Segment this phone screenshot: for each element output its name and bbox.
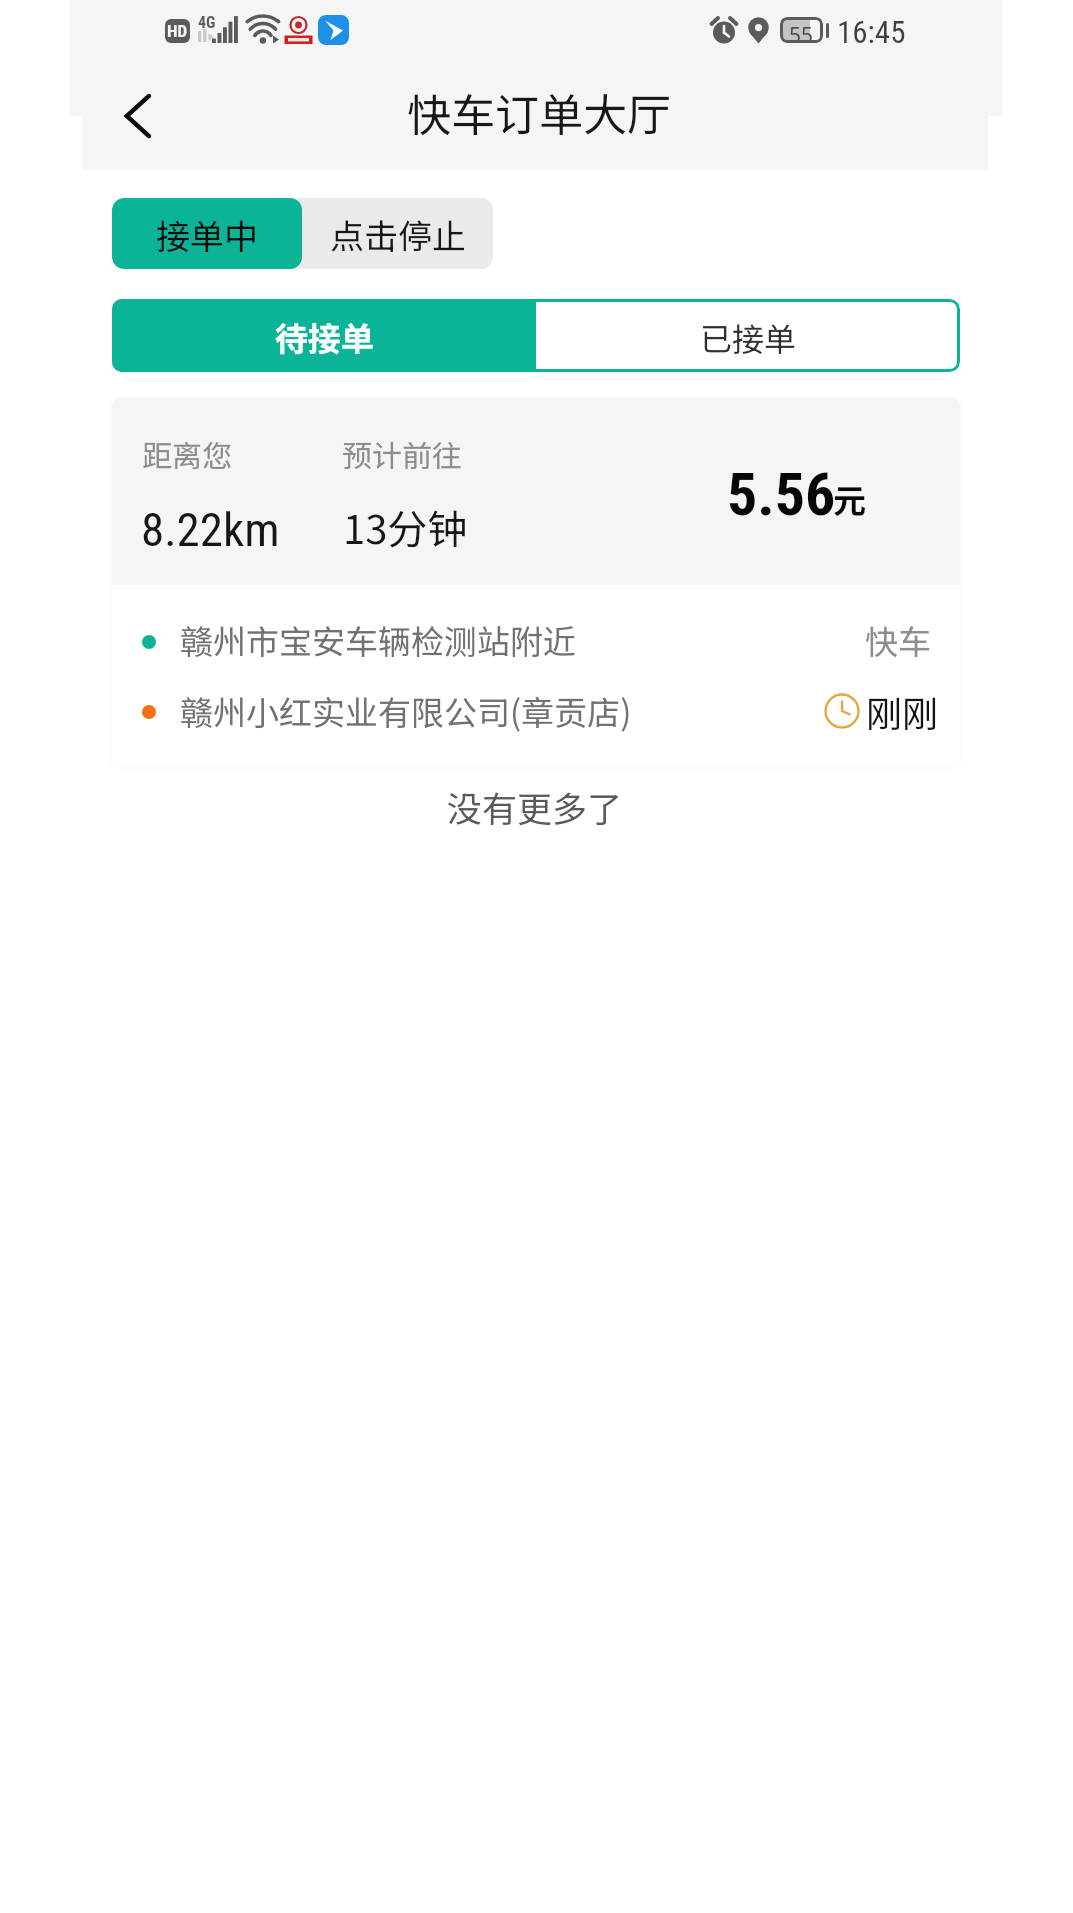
staticText: 55 [789, 21, 814, 43]
staticText: 16:45 [837, 14, 906, 50]
staticText: 点击停止 [330, 210, 466, 259]
staticText: HD [167, 21, 188, 41]
staticText: 没有更多了 [447, 781, 623, 832]
staticText: 距离您 [142, 432, 232, 475]
button[interactable]: Back [106, 84, 170, 148]
button[interactable]: 点击停止 [302, 198, 493, 269]
staticText: 赣州市宝安车辆检测站附近 [180, 616, 576, 664]
staticText: 赣州小红实业有限公司(章贡店) [180, 687, 632, 735]
staticText: 待接单 [275, 313, 374, 361]
button[interactable]: 已接单 [536, 299, 960, 372]
staticText: 8.22km [141, 502, 280, 557]
staticText: 刚刚 [866, 685, 939, 737]
staticText: 预计前往 [342, 432, 462, 475]
staticText: 快车 [865, 616, 931, 664]
staticText: 接单中 [156, 210, 258, 259]
staticText: 元 [833, 475, 866, 523]
staticText: 4G [198, 13, 216, 32]
button[interactable]: 待接单 [112, 299, 536, 372]
button[interactable]: 接单中 [112, 198, 302, 269]
staticText: 13分钟 [343, 498, 468, 556]
button[interactable]: 距离您 [112, 398, 960, 766]
staticText: 5.56 [727, 459, 836, 529]
staticText: 快车订单大厅 [407, 80, 671, 144]
staticText: 已接单 [700, 314, 797, 360]
